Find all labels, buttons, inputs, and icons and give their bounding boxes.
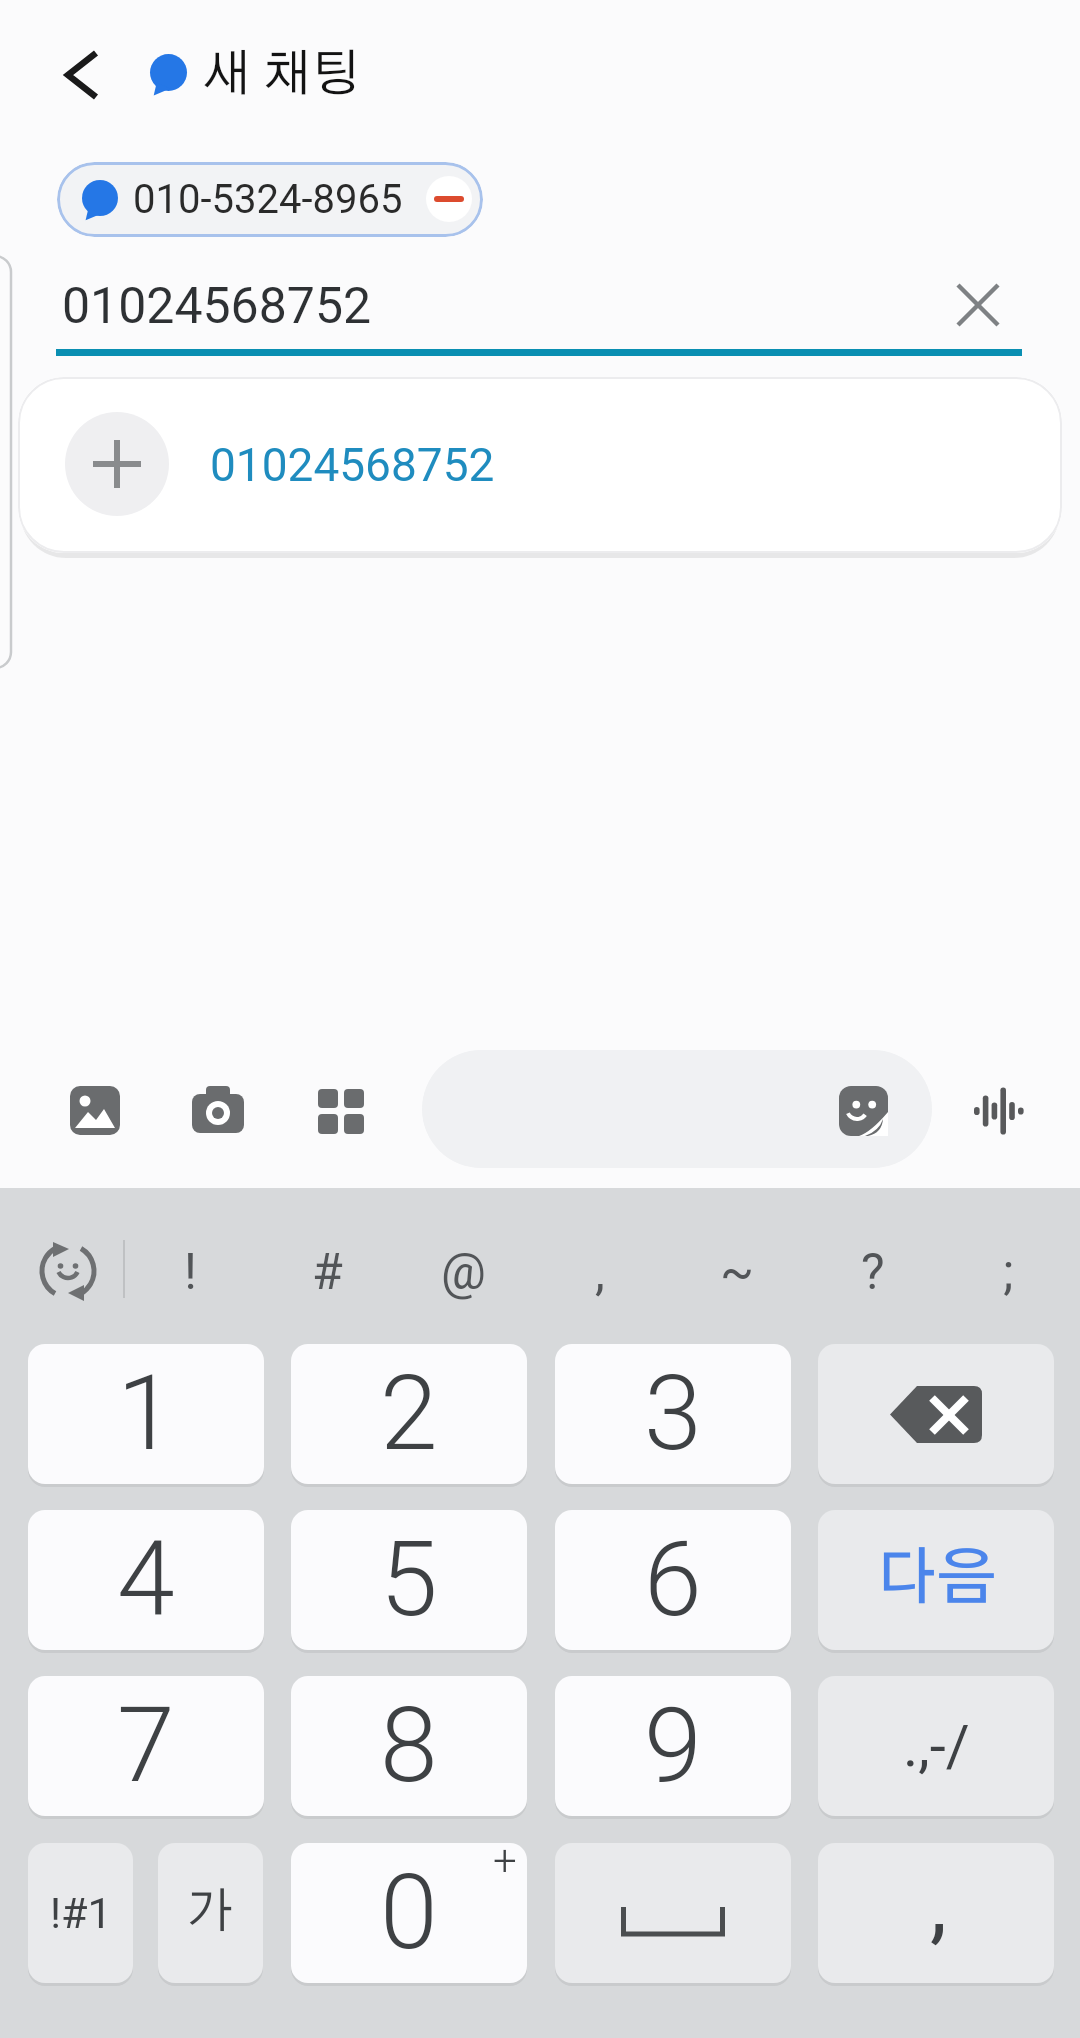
button[interactable]: 3 — [555, 1344, 791, 1484]
staticText: ! — [184, 1243, 197, 1302]
button[interactable] — [40, 1242, 98, 1302]
staticText: 1 — [117, 1353, 175, 1475]
button[interactable]: ! — [145, 1238, 235, 1306]
button[interactable]: 4 — [28, 1510, 264, 1650]
staticText: .,-/ — [903, 1712, 970, 1780]
staticText: 7 — [117, 1685, 175, 1807]
button[interactable]: 다음 — [818, 1510, 1054, 1650]
button[interactable]: !#1 — [28, 1843, 133, 1983]
button[interactable]: 010-5324-8965 — [57, 162, 483, 237]
button[interactable] — [945, 272, 1011, 338]
staticText: , — [930, 1853, 947, 1954]
staticText: 3 — [644, 1353, 702, 1475]
staticText: 010-5324-8965 — [133, 176, 403, 223]
staticText: 5 — [380, 1519, 438, 1641]
button[interactable] — [555, 1843, 791, 1983]
staticText: 4 — [117, 1519, 175, 1641]
button[interactable]: , — [818, 1843, 1054, 1983]
button[interactable] — [422, 1050, 932, 1168]
button[interactable]: 2 — [291, 1344, 527, 1484]
button[interactable]: 7 — [28, 1676, 264, 1816]
button[interactable]: 5 — [291, 1510, 527, 1650]
button[interactable]: 0 — [291, 1843, 527, 1983]
button[interactable] — [56, 41, 116, 109]
button[interactable] — [839, 1086, 888, 1136]
staticText: ? — [861, 1243, 885, 1302]
staticText: !#1 — [50, 1888, 112, 1938]
staticText: 0 — [380, 1852, 438, 1974]
button[interactable]: ? — [828, 1238, 918, 1306]
staticText: 01024568752 — [62, 277, 372, 336]
button[interactable]: 8 — [291, 1676, 527, 1816]
button[interactable] — [972, 1083, 1028, 1139]
staticText: ; — [1003, 1243, 1014, 1302]
button[interactable]: @ — [418, 1238, 508, 1306]
staticText: 새 채팅 — [203, 50, 360, 100]
button[interactable]: 1 — [28, 1344, 264, 1484]
button[interactable] — [818, 1344, 1054, 1484]
button[interactable]: 가 — [158, 1843, 263, 1983]
staticText: 8 — [380, 1685, 438, 1807]
button[interactable]: # — [282, 1238, 372, 1306]
button[interactable]: .,-/ — [818, 1676, 1054, 1816]
button[interactable]: 6 — [555, 1510, 791, 1650]
staticText: 9 — [644, 1685, 702, 1807]
button[interactable]: 9 — [555, 1676, 791, 1816]
staticText: , — [595, 1243, 605, 1302]
staticText: 6 — [644, 1519, 702, 1641]
button[interactable] — [426, 176, 472, 222]
staticText: ~ — [720, 1243, 755, 1302]
staticText: @ — [441, 1243, 486, 1302]
staticText: 가 — [187, 1889, 234, 1937]
button[interactable]: 01024568752 — [18, 377, 1062, 553]
staticText: # — [312, 1243, 343, 1302]
button[interactable] — [318, 1089, 364, 1134]
button[interactable] — [70, 1086, 120, 1135]
button[interactable] — [192, 1086, 244, 1133]
button[interactable]: ~ — [692, 1238, 782, 1306]
staticText: + — [493, 1836, 517, 1885]
button[interactable]: ; — [963, 1238, 1053, 1306]
staticText: 2 — [380, 1353, 438, 1475]
staticText: 01024568752 — [210, 438, 495, 492]
button[interactable]: , — [555, 1238, 645, 1306]
staticText: 다음 — [876, 1549, 997, 1611]
